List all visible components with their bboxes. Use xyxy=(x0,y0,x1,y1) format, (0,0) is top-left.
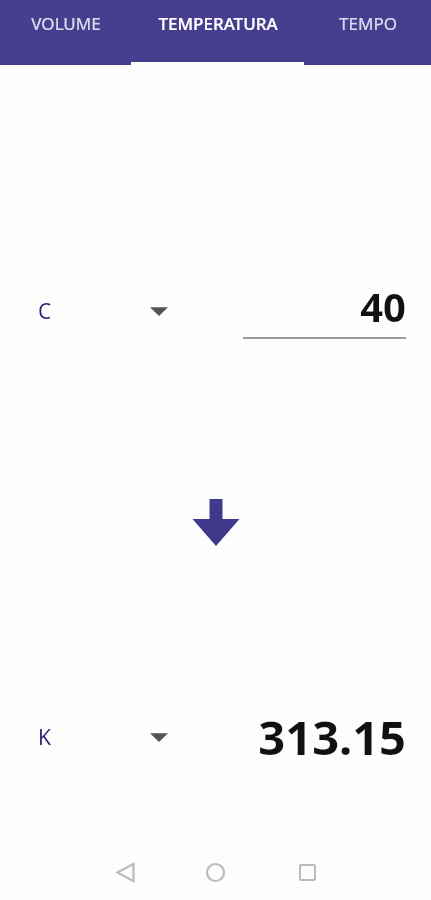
staticText: K xyxy=(38,723,51,752)
button[interactable]: Recent apps xyxy=(286,851,328,893)
button[interactable]: TEMPERATURA xyxy=(131,0,304,65)
button[interactable]: K xyxy=(24,713,184,761)
staticText: C xyxy=(38,297,52,326)
button[interactable]: 40 xyxy=(243,281,406,339)
staticText: 313.15 xyxy=(258,705,406,767)
button[interactable]: Back xyxy=(104,851,146,893)
staticText: VOLUME xyxy=(31,12,101,35)
button[interactable]: Convert xyxy=(191,497,241,547)
staticText: TEMPERATURA xyxy=(158,12,278,35)
staticText: TEMPO xyxy=(339,12,397,35)
button[interactable]: C xyxy=(24,287,184,335)
button[interactable]: VOLUME xyxy=(0,0,131,65)
button[interactable]: TEMPO xyxy=(304,0,431,65)
button[interactable]: 313.15 xyxy=(210,705,406,767)
button[interactable]: Home xyxy=(194,851,236,893)
staticText: 40 xyxy=(360,279,406,333)
